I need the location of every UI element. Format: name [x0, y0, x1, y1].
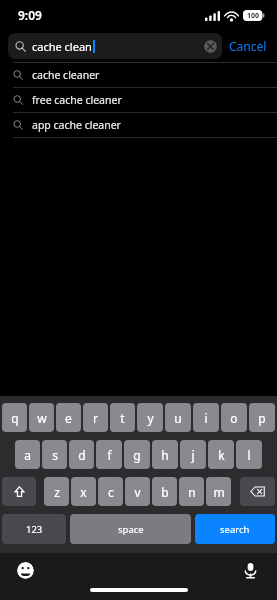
button[interactable]: z	[44, 477, 69, 506]
staticText: space	[118, 523, 144, 536]
button[interactable]: c	[98, 477, 123, 506]
staticText: o	[230, 410, 238, 426]
staticText: d	[78, 447, 86, 463]
button[interactable]: t	[110, 403, 135, 432]
staticText: l	[247, 447, 251, 463]
staticText: 9:09	[18, 7, 42, 23]
button[interactable]: cache cleaner	[0, 63, 277, 87]
staticText: m	[213, 484, 225, 500]
button[interactable]: y	[137, 403, 163, 432]
staticText: 123	[26, 523, 43, 536]
button[interactable]: l	[236, 440, 262, 469]
staticText: n	[188, 484, 196, 500]
button[interactable]: o	[221, 403, 247, 432]
staticText: p	[258, 410, 266, 426]
button[interactable]: 123	[2, 514, 66, 544]
button[interactable]: cache clean	[8, 33, 222, 59]
staticText: h	[161, 447, 169, 463]
staticText: t	[120, 410, 125, 426]
button[interactable]: b	[152, 477, 177, 506]
button[interactable]: g	[124, 440, 150, 469]
button[interactable]: e	[56, 403, 81, 432]
button[interactable]: Clear text	[204, 40, 217, 53]
staticText: c	[108, 484, 114, 500]
button[interactable]: Emoji keyboard	[17, 562, 34, 579]
staticText: cache cleaner	[32, 68, 100, 82]
staticText: x	[80, 484, 87, 500]
staticText: z	[54, 484, 60, 500]
button[interactable]: r	[83, 403, 108, 432]
button[interactable]: space	[70, 514, 191, 544]
button[interactable]: h	[152, 440, 178, 469]
staticText: u	[174, 410, 182, 426]
staticText: e	[65, 410, 72, 426]
staticText: v	[134, 484, 141, 500]
button[interactable]: f	[96, 440, 122, 469]
button[interactable]: j	[180, 440, 206, 469]
staticText: k	[218, 447, 225, 463]
staticText: f	[107, 447, 112, 463]
button[interactable]: m	[206, 477, 231, 506]
staticText: y	[147, 410, 154, 426]
staticText: search	[220, 523, 250, 536]
button[interactable]: search	[195, 514, 275, 544]
button[interactable]: u	[165, 403, 191, 432]
staticText: b	[161, 484, 169, 500]
button[interactable]: q	[2, 403, 27, 432]
staticText: app cache cleaner	[32, 118, 121, 132]
staticText: 100	[247, 11, 260, 21]
button[interactable]: Shift	[2, 477, 36, 506]
staticText: free cache cleaner	[32, 93, 122, 107]
staticText: Cancel	[229, 38, 267, 54]
button[interactable]: Backspace	[240, 477, 275, 506]
button[interactable]: p	[249, 403, 275, 432]
button[interactable]: Voice input	[241, 561, 260, 580]
button[interactable]: s	[42, 440, 67, 469]
button[interactable]: d	[69, 440, 94, 469]
staticText: q	[11, 410, 19, 426]
button[interactable]: Cancel	[222, 35, 269, 57]
staticText: w	[37, 410, 47, 426]
button[interactable]: i	[193, 403, 219, 432]
staticText: s	[52, 447, 58, 463]
button[interactable]: w	[29, 403, 54, 432]
staticText: j	[191, 447, 195, 463]
staticText: g	[133, 447, 141, 463]
button[interactable]: v	[125, 477, 150, 506]
button[interactable]: app cache cleaner	[0, 113, 277, 137]
staticText: a	[24, 447, 31, 463]
staticText: i	[204, 410, 208, 426]
button[interactable]: free cache cleaner	[0, 88, 277, 112]
button[interactable]: a	[15, 440, 40, 469]
staticText: r	[93, 410, 98, 426]
button[interactable]: x	[71, 477, 96, 506]
button[interactable]: k	[208, 440, 234, 469]
staticText: cache clean	[32, 39, 92, 54]
button[interactable]: n	[179, 477, 204, 506]
